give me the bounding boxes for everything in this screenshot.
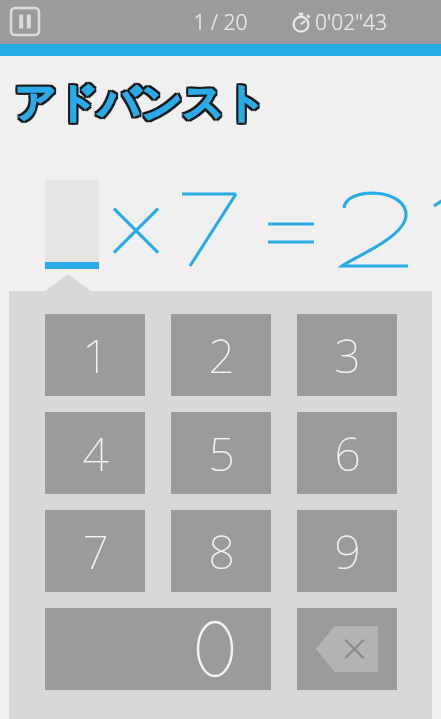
button[interactable]: Pause [8, 5, 42, 38]
staticText: アドバンスト [14, 76, 266, 128]
button[interactable]: 1 [45, 314, 145, 396]
button[interactable]: Backspace [297, 608, 397, 690]
staticText: 3 [334, 324, 361, 387]
staticText: 5 [208, 422, 235, 485]
staticText: 2 [208, 324, 235, 387]
staticText: アドバンスト [16, 76, 268, 128]
button[interactable]: 6 [297, 412, 397, 494]
staticText: アドバンスト [14, 78, 266, 130]
staticText: アドバンスト [16, 80, 268, 132]
staticText: 1 / 20 [193, 8, 248, 37]
button[interactable]: 7 [45, 510, 145, 592]
staticText: 9 [334, 520, 361, 583]
staticText: 7 [82, 520, 109, 583]
staticText: アドバンスト [12, 78, 264, 130]
staticText: 8 [208, 520, 235, 583]
staticText: 0'02"43 [315, 8, 387, 37]
button[interactable] [45, 608, 271, 690]
staticText: 1 [82, 324, 109, 387]
button[interactable]: 2 [171, 314, 271, 396]
staticText: アドバンスト [12, 76, 264, 128]
staticText: アドバンスト [14, 80, 266, 132]
staticText: アドバンスト [16, 78, 268, 130]
staticText: アドバンスト [12, 80, 264, 132]
button[interactable]: 4 [45, 412, 145, 494]
button[interactable]: 9 [297, 510, 397, 592]
button[interactable]: 3 [297, 314, 397, 396]
button[interactable]: 8 [171, 510, 271, 592]
staticText: 4 [82, 422, 109, 485]
staticText: 6 [334, 422, 361, 485]
button[interactable]: 5 [171, 412, 271, 494]
